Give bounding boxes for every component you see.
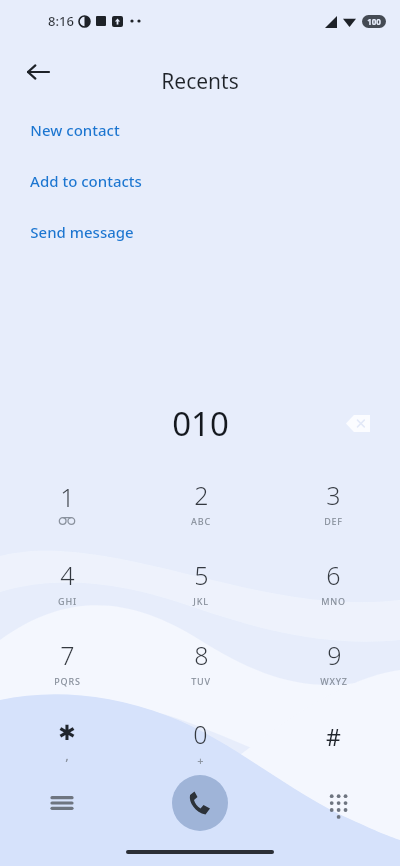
button[interactable]: 7 xyxy=(0,622,134,702)
staticText: 1 xyxy=(60,480,75,514)
staticText: 8 xyxy=(194,638,209,672)
staticText: 4 xyxy=(60,558,75,592)
staticText: PQRS xyxy=(54,675,81,687)
staticText: 010 xyxy=(172,401,229,446)
button[interactable]: Back xyxy=(18,52,58,92)
staticText: # xyxy=(326,721,341,752)
button[interactable]: 2 xyxy=(134,462,267,542)
button[interactable]: 8 xyxy=(134,622,267,702)
staticText: , xyxy=(65,746,69,764)
button[interactable]: 3 xyxy=(267,462,400,542)
staticText: 6 xyxy=(326,558,341,592)
staticText: 2 xyxy=(194,478,209,512)
staticText: Add to contacts xyxy=(30,171,142,191)
staticText: 8:16 xyxy=(48,12,74,30)
button[interactable]: 6 xyxy=(267,542,400,622)
staticText: Recents xyxy=(161,67,239,96)
staticText: 100 xyxy=(367,16,381,27)
button[interactable]: Dialpad xyxy=(316,781,360,825)
staticText: New contact xyxy=(30,120,120,140)
staticText: ✱ xyxy=(58,721,76,745)
staticText: 7 xyxy=(60,638,75,672)
button[interactable]: Send message xyxy=(29,220,135,244)
staticText: MNO xyxy=(321,595,346,607)
button[interactable]: # xyxy=(267,702,400,782)
staticText: GHI xyxy=(58,595,77,607)
button[interactable]: ✱ xyxy=(0,702,134,782)
staticText: JKL xyxy=(193,595,209,607)
button[interactable]: 5 xyxy=(134,542,267,622)
button[interactable]: 0 xyxy=(134,702,267,782)
button[interactable]: 4 xyxy=(0,542,134,622)
staticText: 0 xyxy=(193,717,208,751)
button[interactable]: Backspace xyxy=(338,403,378,443)
button[interactable]: Call xyxy=(172,775,228,831)
staticText: 5 xyxy=(194,558,209,592)
staticText: TUV xyxy=(191,675,211,687)
staticText: ABC xyxy=(191,515,211,527)
staticText: Send message xyxy=(30,222,134,242)
button[interactable]: Menu xyxy=(40,781,84,825)
staticText: + xyxy=(197,753,204,768)
staticText: 9 xyxy=(327,638,342,672)
staticText: 3 xyxy=(326,478,341,512)
button[interactable]: 9 xyxy=(267,622,400,702)
staticText: WXYZ xyxy=(320,675,348,687)
button[interactable]: 1 xyxy=(0,462,134,542)
button[interactable]: New contact xyxy=(29,118,121,142)
staticText: DEF xyxy=(324,515,343,527)
button[interactable]: Add to contacts xyxy=(29,169,143,193)
